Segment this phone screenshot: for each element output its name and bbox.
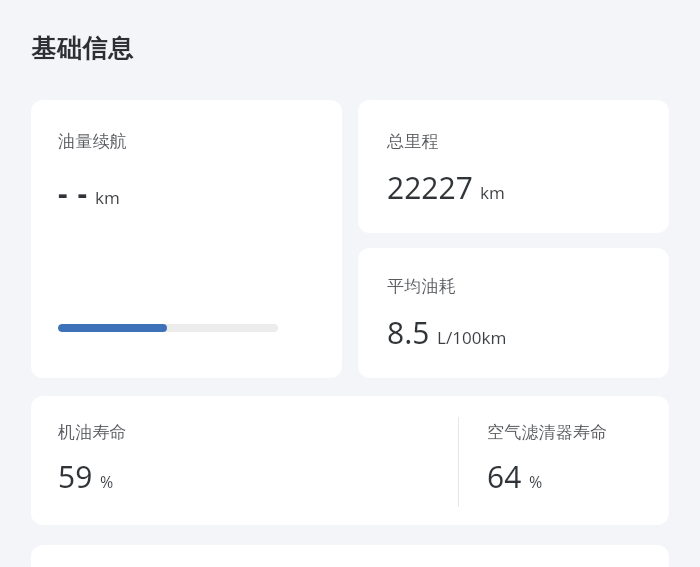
staticText: 平均油耗 <box>387 276 456 297</box>
staticText: 空气滤清器寿命 <box>487 422 608 443</box>
staticText: 8.5 <box>387 312 430 353</box>
staticText: 总里程 <box>387 131 439 152</box>
staticText: L/100km <box>437 326 507 349</box>
button[interactable]: 空气滤清器寿命 <box>459 396 669 525</box>
staticText: km <box>95 186 120 209</box>
staticText: 油量续航 <box>58 131 127 152</box>
button[interactable]: 总里程 <box>358 100 669 233</box>
staticText: 64 <box>487 456 522 497</box>
button[interactable]: 机油寿命 <box>31 396 458 525</box>
staticText: km <box>480 181 505 204</box>
staticText: 机油寿命 <box>58 422 127 443</box>
staticText: % <box>100 471 114 493</box>
staticText: % <box>529 471 543 493</box>
staticText: 基础信息 <box>31 33 133 64</box>
button[interactable]: 平均油耗 <box>358 248 669 378</box>
staticText: 59 <box>58 456 93 497</box>
button[interactable]: 油量续航 <box>31 100 342 378</box>
staticText: 22227 <box>387 167 473 208</box>
staticText: - - <box>58 172 88 213</box>
